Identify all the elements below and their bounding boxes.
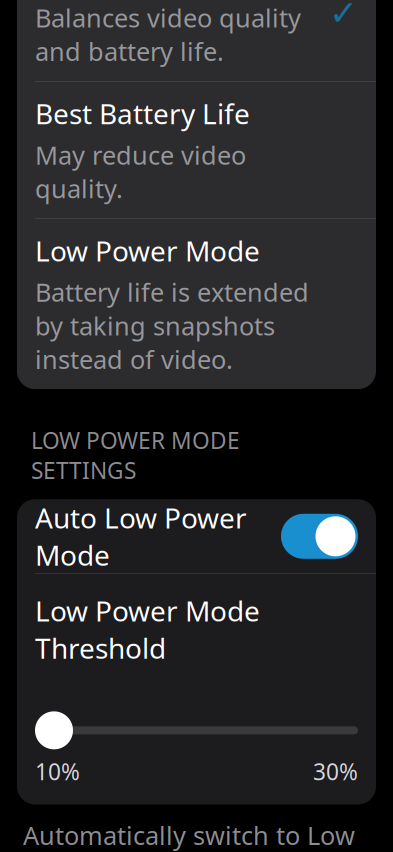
staticText: Balances video quality and battery life. xyxy=(35,1,301,68)
staticText: May reduce video quality. xyxy=(35,138,246,205)
staticText: Battery life is extended by taking snaps… xyxy=(35,275,309,376)
button[interactable]: Optimized xyxy=(17,0,376,81)
staticText: Low Power Mode xyxy=(35,232,260,269)
staticText: 30% xyxy=(313,756,358,786)
button[interactable]: Best Battery Life xyxy=(17,82,376,218)
button[interactable]: Low Power Mode Threshold slider xyxy=(35,710,358,750)
staticText: Auto Low Power Mode xyxy=(35,499,247,573)
staticText: Automatically switch to Low Power Mode w… xyxy=(23,818,356,852)
staticText: 10% xyxy=(35,756,80,786)
staticText: LOW POWER MODE SETTINGS xyxy=(31,425,240,485)
staticText: ✓ xyxy=(329,0,358,32)
button[interactable]: Auto Low Power Mode xyxy=(17,499,376,573)
staticText: Best Battery Life xyxy=(35,95,250,132)
button[interactable]: Low Power Mode xyxy=(17,219,376,389)
staticText: Low Power Mode Threshold xyxy=(35,592,260,666)
